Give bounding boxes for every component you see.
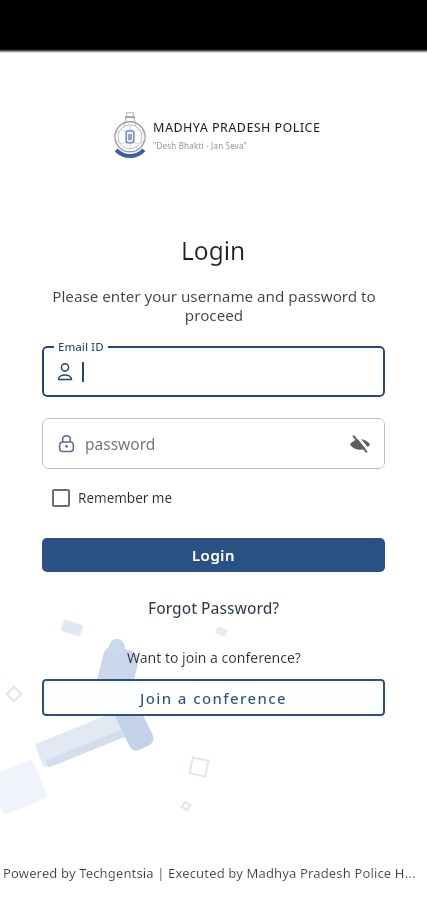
- button[interactable]: Forgot Password?: [148, 597, 280, 618]
- button[interactable]: Remember me: [52, 489, 173, 507]
- button[interactable]: password: [42, 418, 385, 469]
- button[interactable]: Login: [42, 538, 385, 572]
- staticText: Join a conference: [140, 688, 288, 708]
- staticText: "Desh Bhakti - Jan Seva": [153, 140, 248, 151]
- button[interactable]: [42, 346, 385, 397]
- button[interactable]: Join a conference: [42, 679, 385, 716]
- staticText: Powered by Techgentsia | Executed by Mad…: [3, 864, 416, 882]
- staticText: Email ID: [58, 339, 104, 355]
- staticText: Login: [192, 545, 235, 565]
- staticText: password: [85, 433, 156, 454]
- staticText: Please enter your username and password …: [52, 286, 376, 325]
- staticText: Login: [181, 234, 246, 267]
- staticText: Want to join a conference?: [127, 648, 301, 667]
- staticText: Remember me: [78, 489, 173, 507]
- staticText: MADHYA PRADESH POLICE: [153, 119, 321, 136]
